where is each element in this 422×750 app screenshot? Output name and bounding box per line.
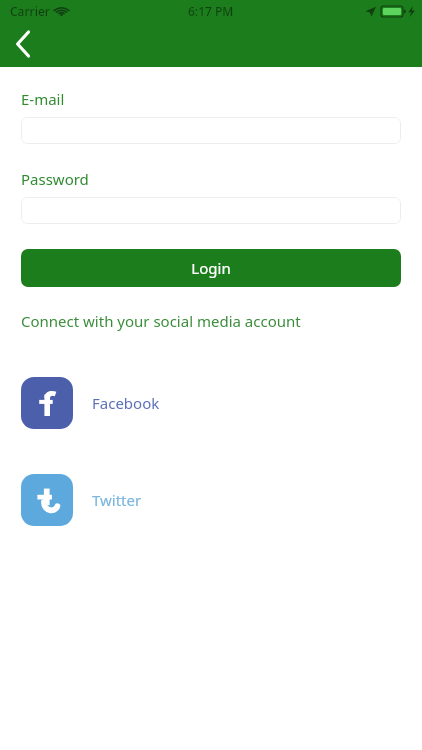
staticText: Connect with your social media account (21, 311, 301, 331)
staticText: Carrier (10, 3, 50, 19)
button[interactable]: Back (6, 26, 42, 62)
staticText: 6:17 PM (188, 3, 234, 19)
staticText: Password (21, 169, 89, 189)
staticText: E-mail (21, 89, 65, 109)
button[interactable]: Text field (21, 117, 401, 144)
button[interactable]: Login (21, 249, 401, 287)
button[interactable]: Facebook (21, 377, 401, 429)
button[interactable]: Text field (21, 197, 401, 224)
staticText: Twitter (92, 490, 142, 510)
button[interactable]: Twitter (21, 474, 401, 526)
staticText: Login (191, 258, 231, 278)
staticText: Facebook (92, 393, 160, 413)
